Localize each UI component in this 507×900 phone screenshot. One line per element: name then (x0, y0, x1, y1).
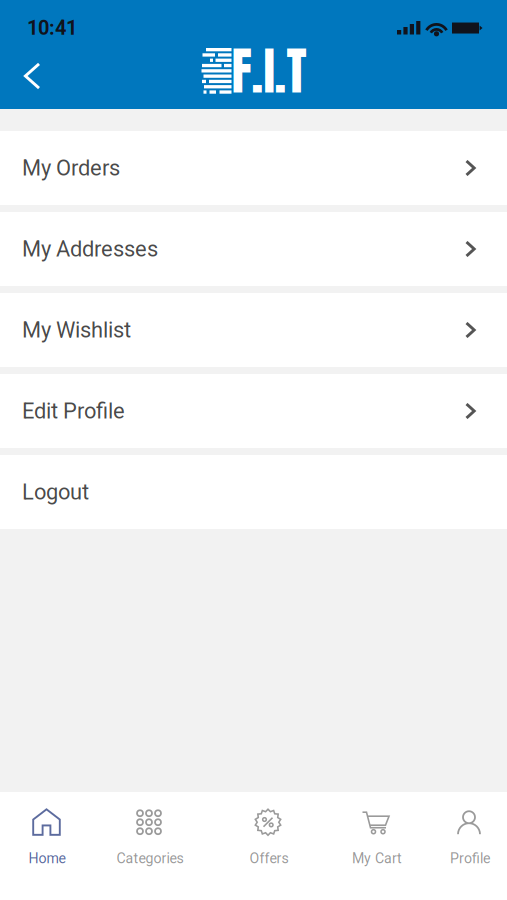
button[interactable]: Home (0, 808, 94, 866)
staticText: F.I.T (231, 33, 306, 109)
staticText: Logout (22, 479, 89, 505)
button[interactable]: Profile (423, 808, 507, 866)
staticText: My Cart (352, 850, 402, 867)
button[interactable]: Categories (103, 808, 197, 866)
staticText: 10:41 (27, 16, 77, 40)
button[interactable]: My Wishlist (0, 293, 507, 367)
button[interactable]: Logout (0, 455, 507, 529)
button[interactable]: Back (0, 44, 61, 98)
staticText: Offers (249, 850, 288, 867)
button[interactable]: Edit Profile (0, 374, 507, 448)
staticText: Categories (116, 850, 183, 867)
button[interactable]: My Orders (0, 131, 507, 205)
staticText: Home (28, 850, 65, 867)
staticText: Edit Profile (22, 398, 125, 424)
staticText: My Orders (22, 155, 120, 181)
staticText: Profile (450, 850, 490, 867)
staticText: My Addresses (22, 236, 158, 262)
staticText: My Wishlist (22, 317, 131, 343)
button[interactable]: Offers (222, 808, 316, 866)
button[interactable]: My Addresses (0, 212, 507, 286)
button[interactable]: My Cart (330, 808, 424, 866)
